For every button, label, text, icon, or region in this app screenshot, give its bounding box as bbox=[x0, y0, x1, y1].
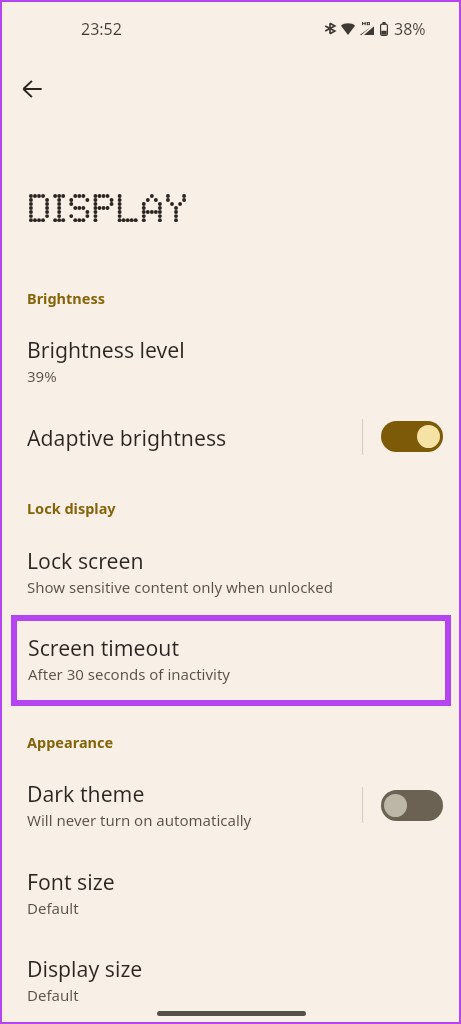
staticText: Show sensitive content only when unlocke… bbox=[27, 577, 334, 597]
staticText: Default bbox=[27, 898, 79, 918]
button[interactable]: Adaptive brightness bbox=[0, 423, 461, 453]
staticText: 39% bbox=[27, 366, 57, 386]
staticText: After 30 seconds of inactivity bbox=[28, 664, 231, 684]
button[interactable]: Lock screen bbox=[0, 546, 461, 600]
button[interactable]: Back bbox=[11, 68, 53, 110]
staticText: Will never turn on automatically bbox=[27, 810, 252, 830]
button[interactable]: Dark theme bbox=[381, 790, 443, 821]
button[interactable]: Screen timeout bbox=[11, 615, 451, 706]
staticText: Dark theme bbox=[27, 779, 145, 808]
staticText: Brightness level bbox=[27, 335, 185, 364]
staticText: Adaptive brightness bbox=[27, 423, 227, 452]
button[interactable]: Dark theme bbox=[0, 779, 461, 833]
staticText: 23:52 bbox=[81, 18, 122, 40]
staticText: Brightness bbox=[27, 288, 105, 308]
button[interactable]: Font size bbox=[0, 867, 461, 921]
button[interactable]: Brightness level bbox=[0, 335, 461, 389]
staticText: Lock display bbox=[27, 498, 116, 518]
button[interactable]: Adaptive brightness bbox=[381, 421, 443, 452]
staticText: Lock screen bbox=[27, 546, 144, 575]
staticText: Font size bbox=[27, 867, 115, 896]
button[interactable]: Display size bbox=[0, 954, 461, 1008]
staticText: Display size bbox=[27, 954, 143, 983]
staticText: Appearance bbox=[27, 732, 114, 752]
staticText: 38% bbox=[394, 18, 426, 40]
staticText: Screen timeout bbox=[28, 633, 180, 662]
staticText: Default bbox=[27, 985, 79, 1005]
